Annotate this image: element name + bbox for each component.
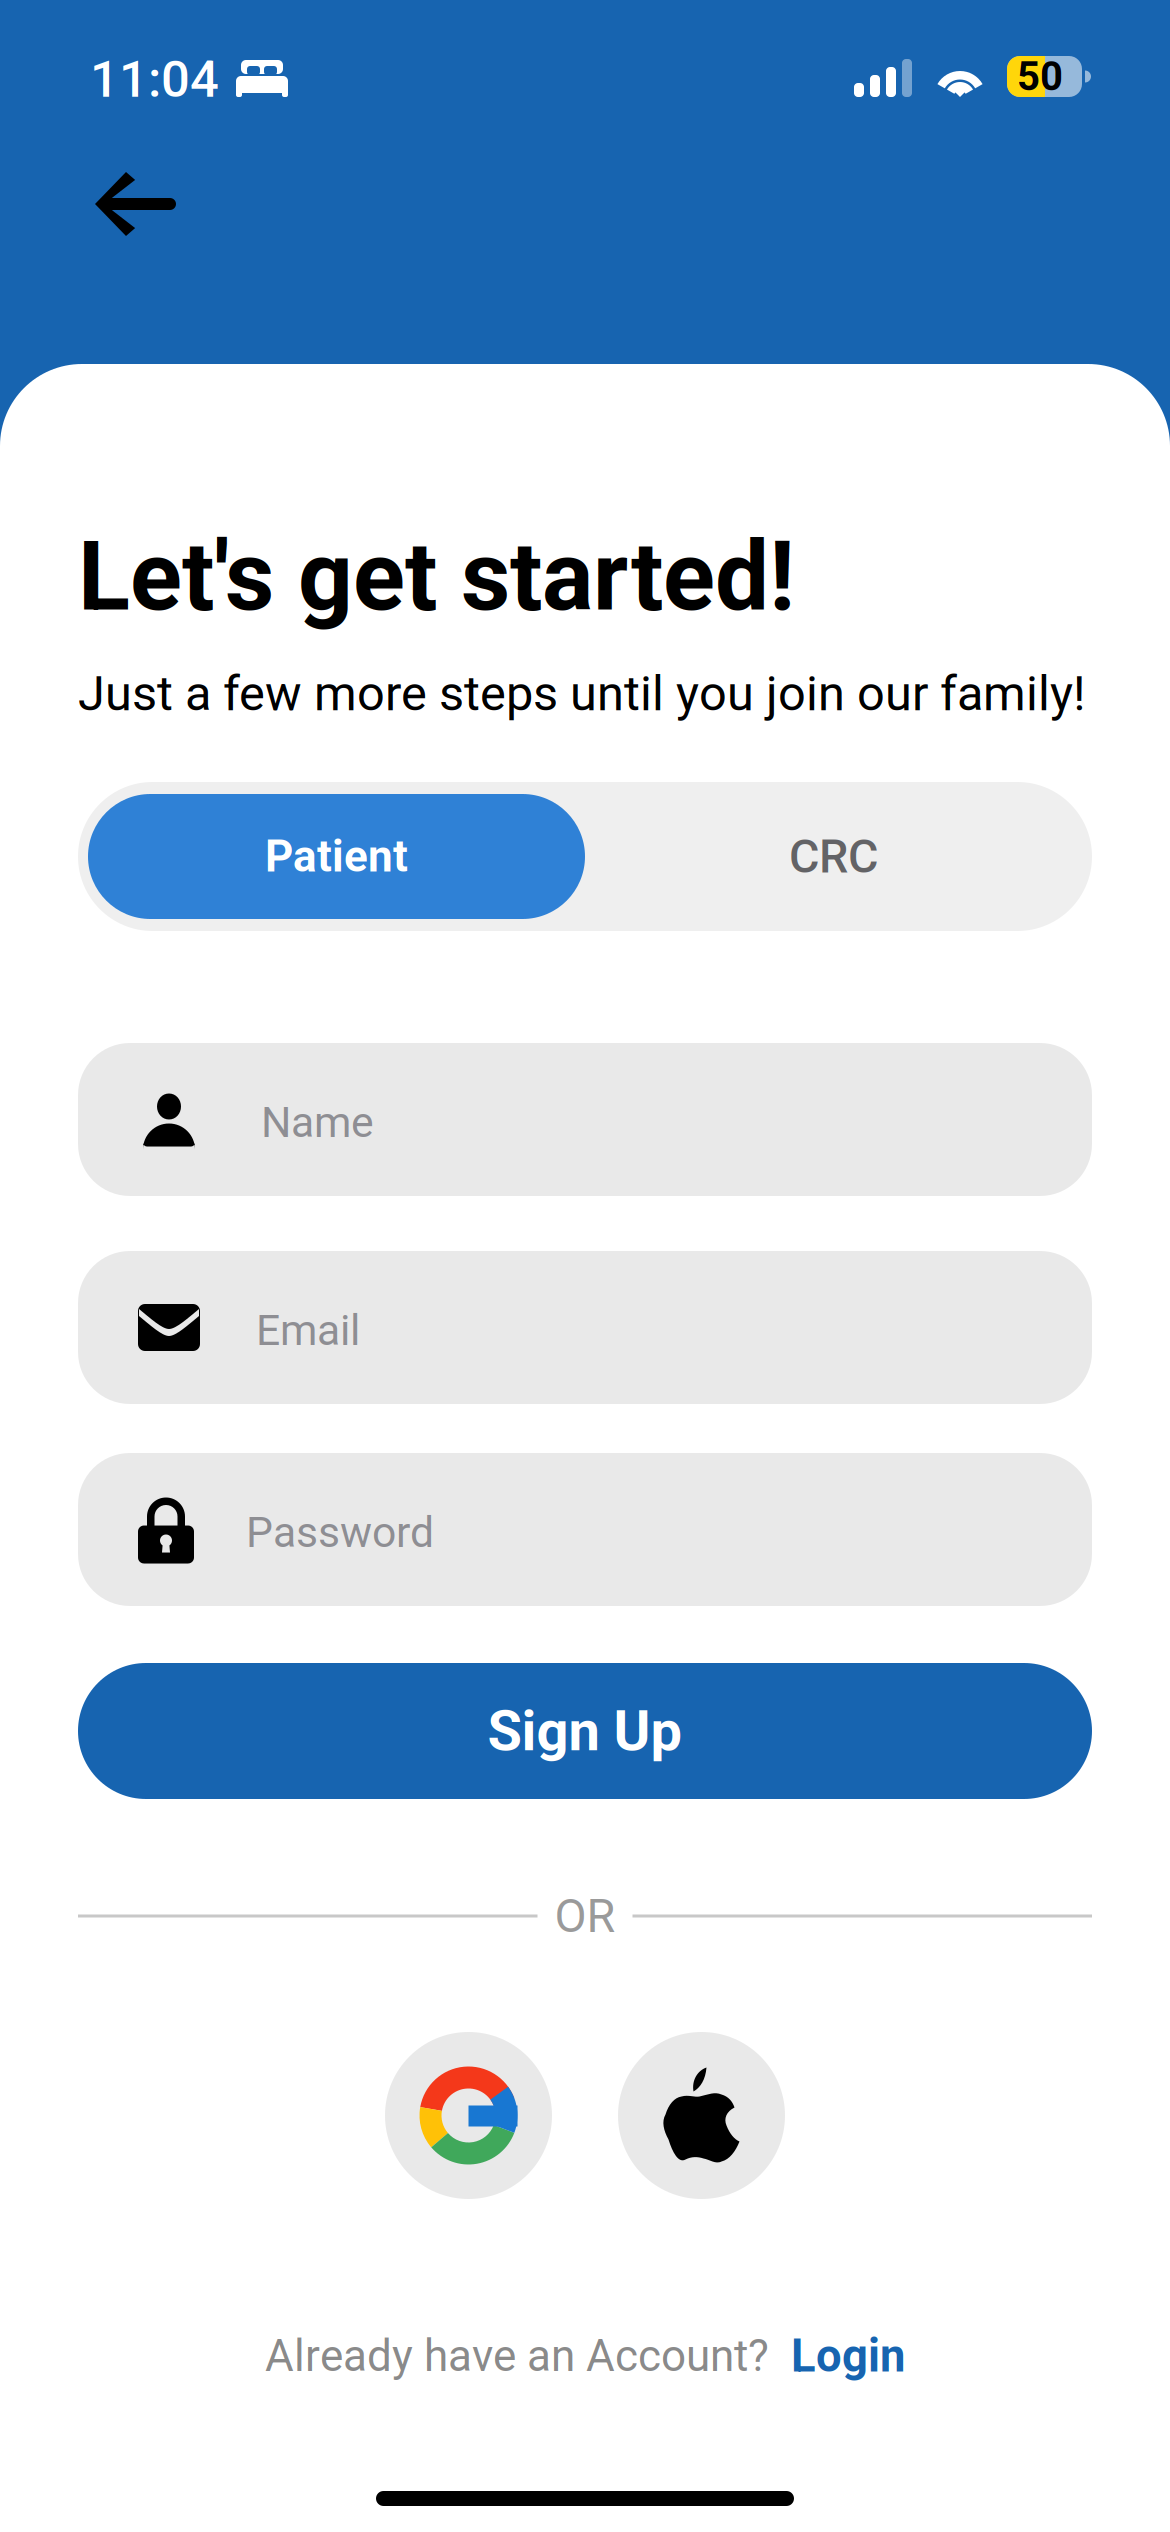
staticText: OR (554, 1889, 615, 1943)
button[interactable]: Continue with Apple (618, 2032, 785, 2199)
staticText: Password (246, 1507, 434, 1557)
button[interactable]: Name (78, 1043, 1092, 1196)
staticText: 11:04 (90, 50, 219, 109)
staticText: Just a few more steps until you join our… (78, 665, 1086, 722)
staticText: Already have an Account? (265, 2330, 769, 2382)
staticText: Patient (265, 831, 408, 882)
staticText: CRC (789, 829, 878, 884)
button[interactable]: Back (0, 145, 262, 265)
button[interactable]: Continue with Google (385, 2032, 552, 2199)
staticText: Let's get started! (78, 520, 795, 633)
staticText: Email (256, 1305, 360, 1355)
button[interactable]: Email (78, 1251, 1092, 1404)
button[interactable]: Patient (88, 794, 585, 919)
staticText: Name (261, 1097, 374, 1147)
button[interactable]: Password (78, 1453, 1092, 1606)
button[interactable]: Already have an Account? (78, 2321, 1092, 2391)
button[interactable]: Sign Up (78, 1663, 1092, 1799)
staticText: 50 (1017, 53, 1063, 100)
staticText: Sign Up (487, 1698, 682, 1764)
button[interactable]: CRC (585, 794, 1082, 919)
staticText: Login (791, 2329, 905, 2382)
